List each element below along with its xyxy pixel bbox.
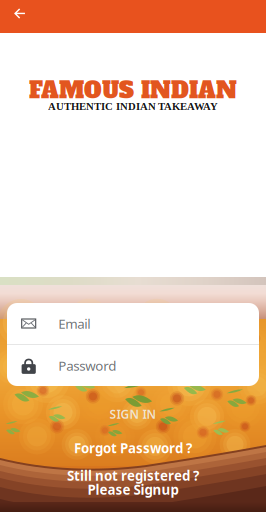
staticText: FAMOUS INDIAN [29,75,237,106]
button[interactable]: Back [5,3,33,29]
staticText: Forgot Password ? [74,439,192,457]
staticText: Email [58,315,90,332]
button[interactable]: Password [7,345,259,386]
staticText: Still not registered ? [67,467,199,484]
button[interactable]: SIGN IN [109,408,156,420]
button[interactable]: Forgot Password ? [74,441,192,455]
staticText: Password [58,357,116,374]
button[interactable]: Still not registered ? [67,469,199,496]
staticText: SIGN IN [109,406,156,422]
button[interactable]: Email [7,303,259,344]
staticText: AUTHENTIC INDIAN TAKEAWAY [48,101,218,112]
staticText: Please Signup [87,481,178,498]
